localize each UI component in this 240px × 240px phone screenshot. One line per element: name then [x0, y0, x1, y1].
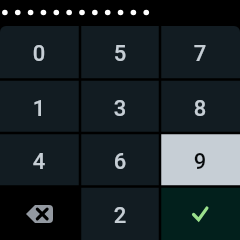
staticText: 8 [193, 96, 206, 122]
button[interactable]: 7 [161, 26, 240, 78]
button[interactable]: 0 [0, 26, 79, 78]
button[interactable]: 1 [0, 81, 79, 132]
button[interactable]: Confirm [161, 188, 240, 240]
button[interactable]: 8 [161, 81, 240, 132]
button[interactable]: 2 [81, 188, 159, 240]
button[interactable]: Backspace [0, 188, 79, 240]
staticText: 4 [32, 149, 45, 175]
button[interactable]: 4 [0, 134, 79, 185]
button[interactable]: 5 [81, 26, 159, 78]
staticText: 5 [113, 41, 126, 67]
staticText: 3 [113, 96, 126, 122]
button[interactable]: 9 [161, 134, 240, 185]
staticText: 6 [113, 149, 126, 175]
staticText: 1 [32, 96, 45, 122]
staticText: 0 [32, 41, 45, 67]
staticText: 9 [193, 149, 206, 175]
staticText: 7 [193, 41, 206, 67]
button[interactable]: 3 [81, 81, 159, 132]
staticText: 2 [113, 203, 126, 229]
button[interactable]: 6 [81, 134, 159, 185]
